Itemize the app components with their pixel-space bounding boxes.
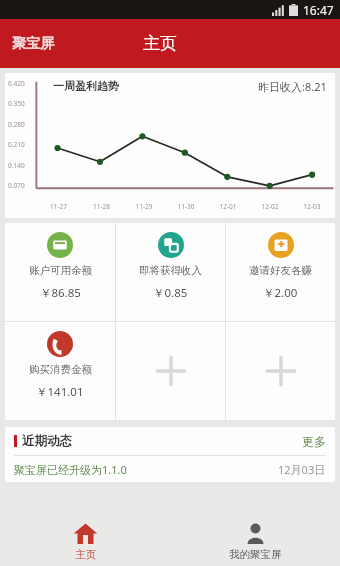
button[interactable]: 账户可用余额 — [5, 223, 115, 321]
staticText: ￥0.85 — [153, 285, 188, 301]
staticText: 12-01 — [207, 202, 249, 211]
staticText: 邀请好友各赚 — [249, 264, 312, 277]
staticText: 近期动态 — [22, 433, 72, 449]
staticText: 11-27 — [37, 202, 80, 211]
staticText: ￥141.01 — [36, 384, 84, 400]
staticText: 主页 — [75, 548, 96, 561]
staticText: 昨日收入:8.21 — [258, 79, 327, 94]
staticText: ￥86.85 — [40, 285, 81, 301]
staticText: 我的聚宝屏 — [229, 548, 282, 561]
staticText: 11-29 — [123, 202, 165, 211]
staticText: 0.280 — [8, 120, 25, 129]
staticText: 11-30 — [165, 202, 207, 211]
staticText: 16:47 — [303, 2, 334, 18]
button[interactable]: 我的聚宝屏 — [170, 516, 340, 566]
staticText: 购买消费金额 — [29, 363, 92, 376]
staticText: 0.070 — [8, 181, 25, 190]
button[interactable]: 购买消费金额 — [5, 322, 115, 420]
staticText: 聚宝屏 — [12, 35, 54, 53]
button[interactable]: 主页 — [0, 516, 170, 566]
staticText: 11-28 — [80, 202, 123, 211]
button[interactable]: Add — [116, 322, 225, 420]
staticText: 即将获得收入 — [139, 264, 202, 277]
button[interactable]: 近期动态 — [5, 427, 335, 455]
staticText: 12-03 — [291, 202, 333, 211]
staticText: 账户可用余额 — [29, 264, 92, 277]
button[interactable]: Add — [226, 322, 335, 420]
button[interactable]: 0.420 — [5, 73, 335, 218]
staticText: 0.140 — [8, 161, 25, 170]
staticText: 0.350 — [8, 99, 25, 108]
staticText: ￥2.00 — [263, 285, 298, 301]
staticText: 一周盈利趋势 — [53, 79, 119, 93]
staticText: 12-02 — [249, 202, 291, 211]
staticText: 0.210 — [8, 140, 25, 149]
staticText: 主页 — [143, 33, 177, 54]
button[interactable]: 邀请好友各赚 — [226, 223, 335, 321]
button[interactable]: 聚宝屏已经升级为1.1.0 — [5, 456, 335, 482]
staticText: 12月03日 — [278, 462, 326, 477]
staticText: 0.420 — [8, 79, 25, 88]
staticText: 聚宝屏已经升级为1.1.0 — [14, 462, 127, 477]
button[interactable]: 即将获得收入 — [116, 223, 225, 321]
staticText: 更多 — [302, 434, 326, 449]
